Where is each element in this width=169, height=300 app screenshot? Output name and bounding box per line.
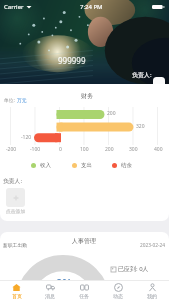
staticText: 200	[107, 110, 116, 117]
button[interactable]: 任务	[67, 281, 101, 300]
staticText: 0%	[56, 275, 73, 290]
staticText: 动态	[113, 293, 123, 299]
staticText: 7:24 PM	[80, 3, 103, 11]
staticText: 首页	[12, 293, 22, 299]
button[interactable]: 支出	[72, 162, 92, 169]
staticText: -100	[30, 146, 41, 153]
staticText: -120	[21, 134, 32, 141]
staticText: 万元	[17, 97, 27, 103]
button[interactable]: 动态	[101, 281, 135, 300]
button[interactable]: 收入	[31, 162, 51, 169]
staticText: 2023-02-24	[140, 242, 166, 249]
button[interactable]: 消息	[33, 281, 67, 300]
staticText: 财务	[81, 92, 93, 100]
staticText: 任务	[79, 293, 89, 299]
staticText: 消息	[45, 293, 55, 299]
button[interactable]: 我的	[135, 281, 169, 300]
staticText: 320	[136, 123, 145, 130]
button[interactable]: 点击添加负责人	[6, 188, 25, 207]
staticText: 负责人:	[132, 71, 152, 79]
staticText: 点击添加	[6, 208, 26, 214]
staticText: 我的	[147, 293, 157, 299]
staticText: 400	[154, 146, 163, 153]
staticText: 结余	[121, 162, 132, 169]
staticText: Carrier	[4, 3, 24, 11]
staticText: 单位:	[4, 97, 17, 104]
staticText: 300	[129, 146, 138, 153]
button[interactable]: 首页	[0, 281, 33, 300]
staticText: 负责人:	[3, 177, 22, 185]
staticText: 人事管理	[72, 237, 96, 245]
staticText: 0	[59, 146, 62, 153]
staticText: 200	[105, 146, 114, 153]
staticText: 100	[80, 146, 89, 153]
staticText: -200	[6, 146, 17, 153]
button[interactable]: 结余	[112, 162, 132, 169]
staticText: 新职工出勤	[3, 242, 27, 248]
staticText: 999999	[58, 55, 86, 66]
staticText: 收入	[40, 162, 51, 169]
staticText: 支出	[81, 162, 92, 169]
staticText: 已应到: 0人	[118, 265, 149, 273]
